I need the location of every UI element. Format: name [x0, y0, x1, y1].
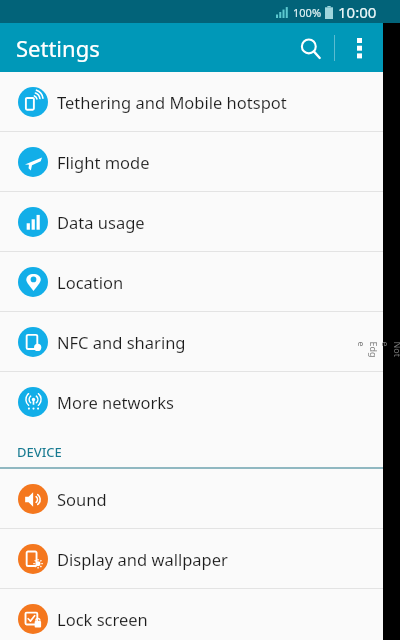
button[interactable]: Location [0, 252, 383, 311]
button[interactable]: Search [286, 24, 334, 72]
button[interactable]: Display and wallpaper [0, 529, 383, 588]
staticText: Location [57, 271, 124, 293]
staticText: Display and wallpaper [57, 548, 228, 570]
staticText: Flight mode [57, 151, 150, 173]
staticText: Data usage [57, 211, 145, 233]
staticText: Settings [16, 33, 100, 63]
staticText: More networks [57, 391, 174, 413]
button[interactable]: NFC and sharing [0, 312, 383, 371]
staticText: Sound [57, 488, 107, 510]
staticText: NFC and sharing [57, 331, 186, 353]
staticText: Lock screen [57, 608, 148, 630]
button[interactable]: Data usage [0, 192, 383, 251]
button[interactable]: Sound [0, 469, 383, 528]
staticText: Tethering and Mobile hotspot [57, 91, 287, 113]
staticText: 10:00 [338, 2, 377, 22]
staticText: 100% [293, 5, 322, 20]
staticText: DEVICE [17, 443, 62, 461]
button[interactable]: Flight mode [0, 132, 383, 191]
staticText: Galaxy Note Edge [355, 341, 400, 358]
button[interactable]: Lock screen [0, 589, 383, 640]
button[interactable]: More networks [0, 372, 383, 431]
button[interactable]: More options [335, 24, 383, 72]
button[interactable]: Tethering and Mobile hotspot [0, 72, 383, 131]
